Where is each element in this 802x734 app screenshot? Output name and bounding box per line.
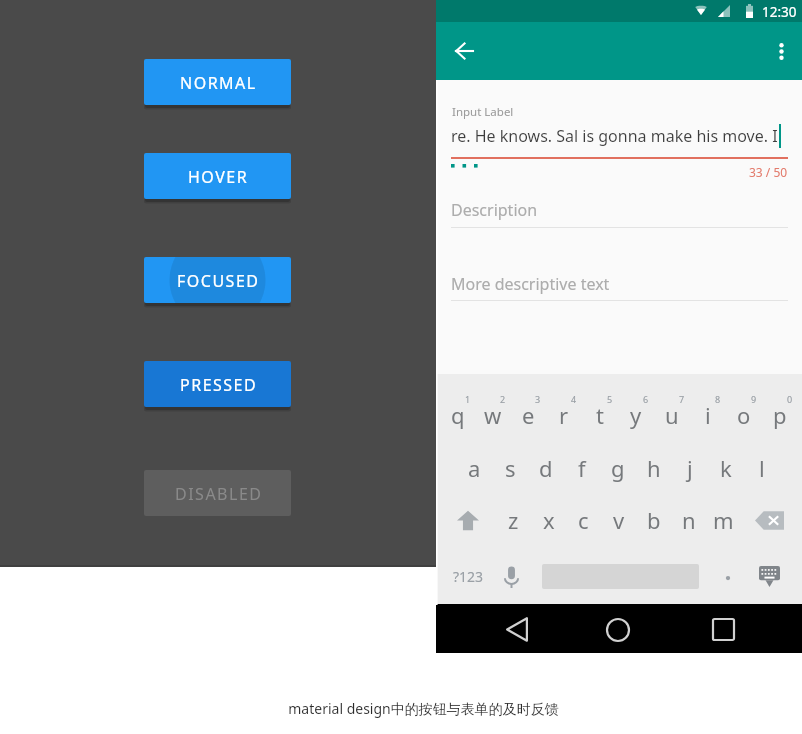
button[interactable]: x [531, 494, 566, 546]
button[interactable]: PRESSED [144, 361, 291, 407]
staticText: h [647, 453, 661, 483]
staticText: Input Label [452, 104, 514, 120]
staticText: e [522, 400, 535, 430]
button[interactable]: 4 [546, 390, 582, 442]
staticText: ?123 [453, 567, 484, 586]
staticText: q [451, 400, 465, 430]
button[interactable]: 2 [475, 390, 510, 442]
button[interactable]: m [706, 494, 741, 546]
staticText: FOCUSED [177, 270, 260, 292]
staticText: k [720, 453, 732, 483]
button[interactable]: Shift [440, 494, 496, 546]
button[interactable]: 8 [690, 390, 726, 442]
staticText: d [539, 453, 553, 483]
staticText: 1 [465, 393, 471, 405]
staticText: re. He knows. Sal is gonna make his move… [451, 125, 778, 147]
button[interactable]: Back [495, 604, 539, 653]
button[interactable]: DISABLED [144, 470, 291, 516]
button[interactable] [715, 550, 741, 603]
staticText: n [682, 505, 696, 535]
button[interactable]: Home [596, 604, 640, 653]
button[interactable]: 5 [582, 390, 618, 442]
button[interactable]: 6 [618, 390, 654, 442]
staticText: 4 [571, 393, 577, 405]
button[interactable]: h [636, 442, 672, 494]
button[interactable]: ?123 [440, 550, 496, 603]
staticText: 6 [643, 393, 649, 405]
staticText: t [596, 400, 604, 430]
button[interactable]: More options [763, 33, 799, 69]
button[interactable]: 3 [510, 390, 546, 442]
staticText: material design中的按钮与表单的及时反馈 [288, 699, 559, 718]
staticText: x [543, 505, 555, 535]
button[interactable]: j [672, 442, 708, 494]
staticText: 5 [607, 393, 613, 405]
staticText: PRESSED [180, 374, 258, 396]
button[interactable]: k [708, 442, 744, 494]
button[interactable]: d [528, 442, 564, 494]
staticText: More descriptive text [451, 273, 610, 295]
staticText: s [505, 453, 516, 483]
staticText: DISABLED [175, 483, 263, 505]
button[interactable]: Switch keyboard [741, 550, 798, 603]
button[interactable]: f [564, 442, 600, 494]
button[interactable]: z [496, 494, 531, 546]
button[interactable]: c [566, 494, 601, 546]
button[interactable]: 0 [762, 390, 798, 442]
button[interactable]: a [457, 442, 492, 494]
staticText: 9 [751, 393, 757, 405]
staticText: NORMAL [180, 72, 257, 94]
button[interactable]: HOVER [144, 153, 291, 199]
button[interactable]: l [744, 442, 780, 494]
button[interactable]: NORMAL [144, 59, 291, 105]
staticText: u [665, 400, 679, 430]
staticText: 7 [679, 393, 685, 405]
staticText: f [578, 453, 586, 483]
staticText: 12:30 [762, 3, 797, 21]
staticText: p [773, 400, 787, 430]
button[interactable]: s [492, 442, 528, 494]
staticText: g [611, 453, 625, 483]
staticText: 33 / 50 [749, 164, 788, 180]
button[interactable]: 9 [726, 390, 762, 442]
button[interactable]: 7 [654, 390, 690, 442]
staticText: i [705, 400, 711, 430]
button[interactable]: Recents [701, 604, 745, 653]
staticText: o [737, 400, 751, 430]
staticText: m [713, 505, 734, 535]
staticText: z [508, 505, 519, 535]
button[interactable]: b [636, 494, 671, 546]
button[interactable]: 1 [440, 390, 475, 442]
staticText: r [559, 400, 569, 430]
button[interactable]: Voice input [496, 550, 526, 603]
staticText: l [759, 453, 765, 483]
staticText: a [468, 453, 481, 483]
staticText: HOVER [188, 166, 249, 188]
staticText: 2 [500, 393, 506, 405]
staticText: w [484, 400, 502, 430]
staticText: y [630, 400, 642, 430]
staticText: c [578, 505, 589, 535]
staticText: 3 [535, 393, 541, 405]
staticText: b [647, 505, 661, 535]
staticText: 8 [715, 393, 721, 405]
staticText: v [613, 505, 625, 535]
button[interactable]: v [601, 494, 636, 546]
button[interactable]: g [600, 442, 636, 494]
button[interactable]: Back [446, 33, 482, 69]
button[interactable]: FOCUSED [144, 257, 291, 303]
staticText: j [687, 453, 693, 483]
staticText: Description [451, 199, 538, 221]
button[interactable]: Delete [741, 494, 798, 546]
staticText: 0 [787, 393, 793, 405]
button[interactable]: n [671, 494, 706, 546]
